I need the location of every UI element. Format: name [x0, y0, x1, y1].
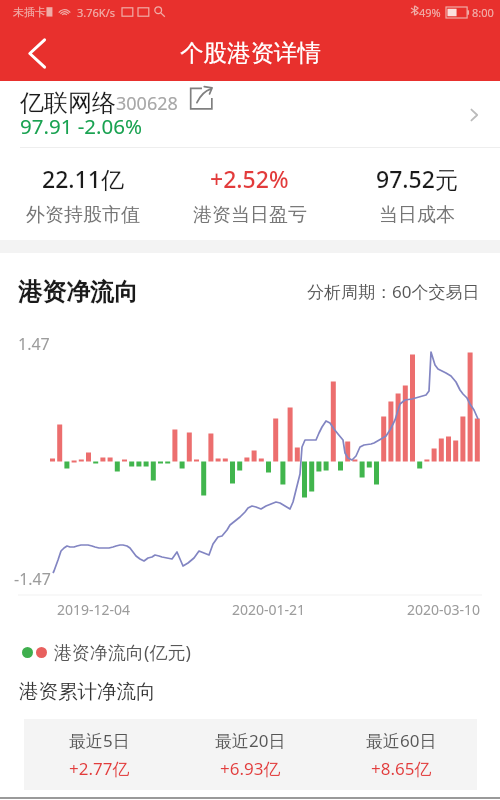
staticText: 最近5日: [69, 729, 130, 752]
staticText: +2.77亿: [69, 757, 130, 780]
staticText: 个股港资详情: [180, 38, 321, 68]
staticText: 22.11亿: [42, 163, 124, 194]
staticText: 亿联网络: [20, 88, 116, 118]
staticText: 最近20日: [215, 729, 286, 752]
staticText: +6.93亿: [220, 757, 281, 780]
staticText: 港资净流向: [18, 277, 138, 307]
staticText: 49%: [419, 5, 441, 20]
staticText: -1.47: [14, 568, 51, 590]
staticText: 当日成本: [379, 203, 455, 227]
staticText: 港资净流向(亿元): [54, 640, 191, 665]
staticText: 2020-03-10: [407, 600, 481, 619]
staticText: 97.91 -2.06%: [20, 112, 143, 140]
staticText: 97.52元: [376, 163, 458, 194]
staticText: 3.76K/s: [77, 5, 115, 20]
button[interactable]: Share: [186, 84, 216, 114]
staticText: 分析周期：60个交易日: [307, 280, 480, 303]
staticText: 港资当日盈亏: [193, 203, 307, 227]
staticText: 最近60日: [366, 729, 437, 752]
staticText: 未插卡: [13, 5, 46, 19]
staticText: 8:00: [472, 5, 494, 20]
staticText: +2.52%: [210, 163, 289, 194]
staticText: 外资持股市值: [26, 203, 140, 227]
button[interactable]: Back: [0, 25, 66, 81]
button[interactable]: 亿联网络: [0, 81, 500, 148]
staticText: 港资累计净流向: [19, 679, 156, 704]
staticText: 2020-01-21: [232, 600, 306, 619]
staticText: +8.65亿: [371, 757, 432, 780]
staticText: 1.47: [18, 333, 50, 355]
staticText: 2019-12-04: [57, 600, 131, 619]
staticText: 300628: [116, 91, 178, 116]
